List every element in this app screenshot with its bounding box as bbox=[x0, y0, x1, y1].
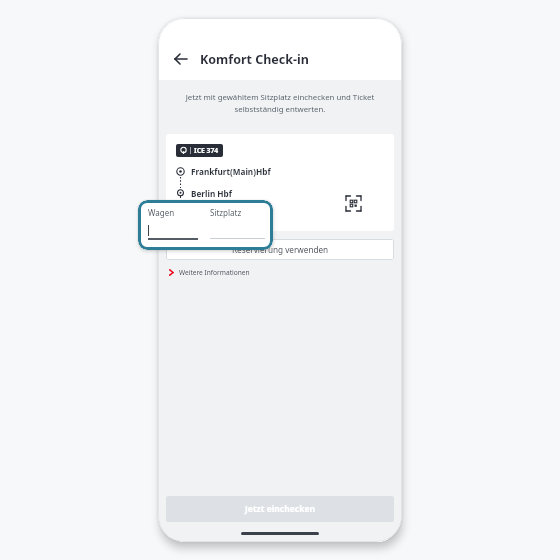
staticText: Reservierung verwenden bbox=[232, 244, 329, 255]
button[interactable]: Ticket scannen bbox=[340, 190, 366, 216]
button[interactable]: Jetzt einchecken bbox=[166, 496, 394, 522]
button[interactable]: Zurück bbox=[170, 48, 192, 70]
staticText: Jetzt mit gewähltem Sitzplatz einchecken… bbox=[176, 92, 384, 114]
staticText: Jetzt einchecken bbox=[245, 503, 316, 515]
button[interactable]: Reservierung verwenden bbox=[166, 239, 394, 260]
staticText: Sitzplatz bbox=[210, 207, 242, 218]
staticText: Komfort Check-in bbox=[200, 51, 309, 68]
staticText: Berlin Hbf bbox=[191, 188, 232, 199]
staticText: Frankfurt(Main)Hbf bbox=[191, 166, 271, 177]
staticText: Wagen bbox=[148, 207, 175, 218]
button[interactable]: Wagen bbox=[138, 200, 273, 250]
staticText: Weitere Informationen bbox=[179, 268, 250, 277]
staticText: ICE 374 bbox=[194, 146, 219, 155]
button[interactable]: Weitere Informationen bbox=[168, 268, 250, 277]
button[interactable]: ICE 374 bbox=[166, 134, 394, 231]
